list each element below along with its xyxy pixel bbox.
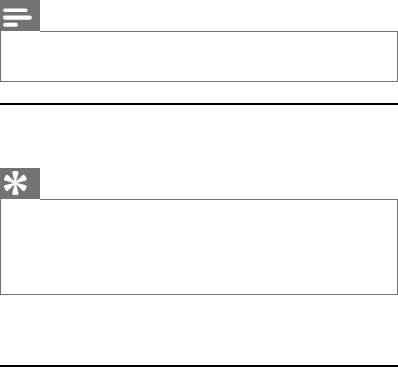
- button[interactable]: Title field: [0, 31, 398, 82]
- button[interactable]: Notes field: [0, 199, 398, 295]
- button[interactable]: Sort: [0, 0, 40, 31]
- button[interactable]: Highlight: [0, 168, 40, 199]
